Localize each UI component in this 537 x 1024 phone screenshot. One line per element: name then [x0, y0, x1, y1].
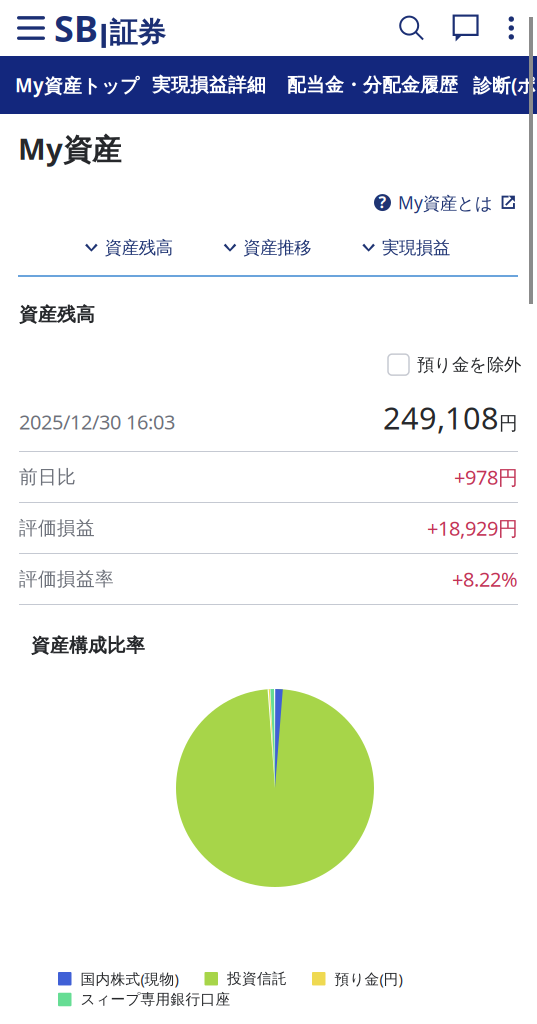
staticText: 資産残高: [19, 303, 95, 326]
staticText: 資産残高: [105, 237, 173, 258]
staticText: +978円: [454, 464, 518, 490]
button[interactable]: Search: [376, 3, 442, 53]
staticText: ?: [378, 191, 386, 213]
button[interactable]: My資産トップ: [15, 56, 139, 114]
button[interactable]: Messages: [442, 4, 492, 51]
staticText: 証券: [109, 15, 165, 50]
button[interactable]: 実現損益詳細: [152, 56, 266, 114]
button[interactable]: 診断(ポ: [473, 56, 536, 114]
staticText: 預り金(円): [334, 969, 402, 988]
staticText: 資産構成比率: [31, 634, 145, 657]
staticText: 資産推移: [243, 237, 311, 258]
staticText: 評価損益: [19, 516, 95, 539]
staticText: +18,929円: [427, 515, 518, 541]
staticText: 実現損益: [382, 237, 450, 258]
staticText: +8.22%: [452, 566, 518, 592]
staticText: 前日比: [19, 465, 76, 488]
button[interactable]: More options: [492, 4, 526, 52]
staticText: SB: [54, 4, 98, 52]
button[interactable]: Menu: [8, 4, 54, 52]
button[interactable]: 実現損益: [360, 231, 452, 264]
button[interactable]: ?: [374, 186, 517, 219]
staticText: My資産トップ: [15, 73, 139, 97]
staticText: 円: [499, 412, 518, 435]
staticText: 診断(ポ: [473, 73, 536, 97]
staticText: 投資信託: [227, 970, 287, 988]
button[interactable]: 配当金・分配金履歴: [287, 56, 458, 114]
staticText: My資産とは: [398, 191, 493, 214]
staticText: My資産: [18, 129, 121, 168]
staticText: 2025/12/30 16:03: [19, 408, 175, 435]
button[interactable]: 預り金を除外: [388, 350, 521, 379]
staticText: スィープ専用銀行口座: [80, 990, 230, 1008]
button[interactable]: 資産残高: [83, 231, 175, 264]
staticText: 249,108: [383, 397, 499, 438]
staticText: 評価損益率: [19, 567, 114, 590]
staticText: 国内株式(現物): [80, 969, 178, 988]
staticText: 実現損益詳細: [152, 73, 266, 96]
staticText: 配当金・分配金履歴: [287, 73, 458, 96]
staticText: 預り金を除外: [417, 354, 521, 375]
button[interactable]: 資産推移: [222, 231, 313, 264]
